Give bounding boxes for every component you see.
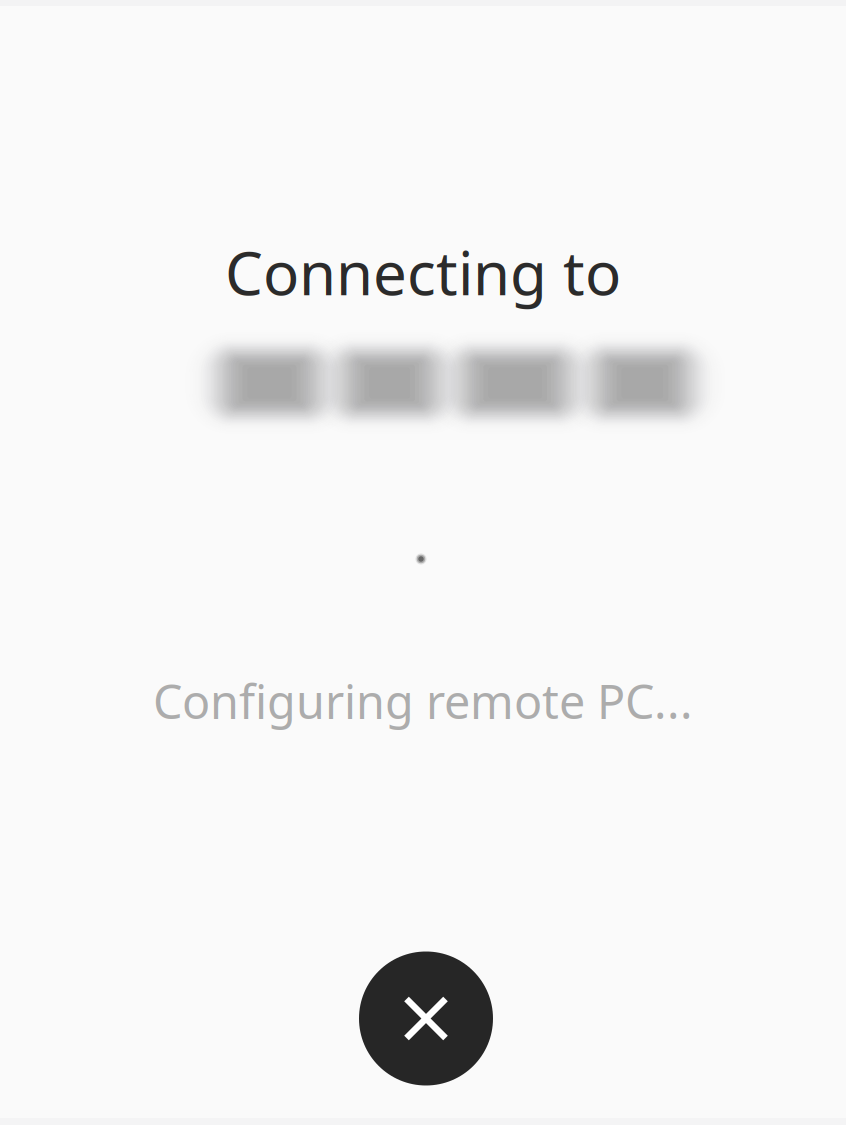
- staticText: Connecting to: [225, 232, 621, 312]
- staticText: Configuring remote PC...: [153, 670, 693, 732]
- button[interactable]: Cancel: [359, 951, 493, 1085]
